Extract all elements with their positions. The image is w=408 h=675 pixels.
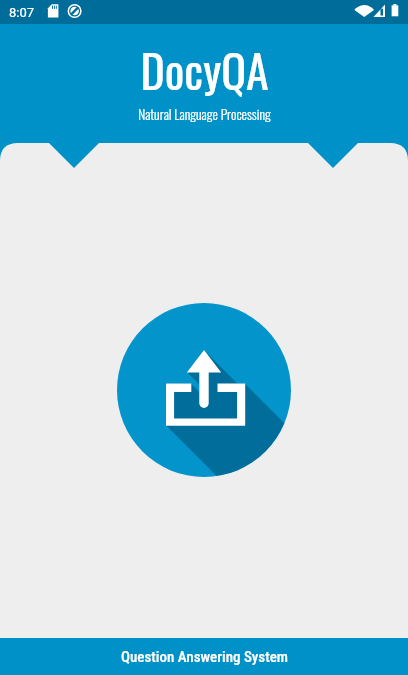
staticText: DocyQA xyxy=(140,35,269,103)
staticText: Natural Language Processing xyxy=(138,104,271,124)
button[interactable]: Upload document xyxy=(117,303,291,477)
staticText: Question Answering System xyxy=(121,648,288,666)
staticText: 8:07 xyxy=(9,5,35,20)
button[interactable]: Question Answering System xyxy=(0,638,408,675)
